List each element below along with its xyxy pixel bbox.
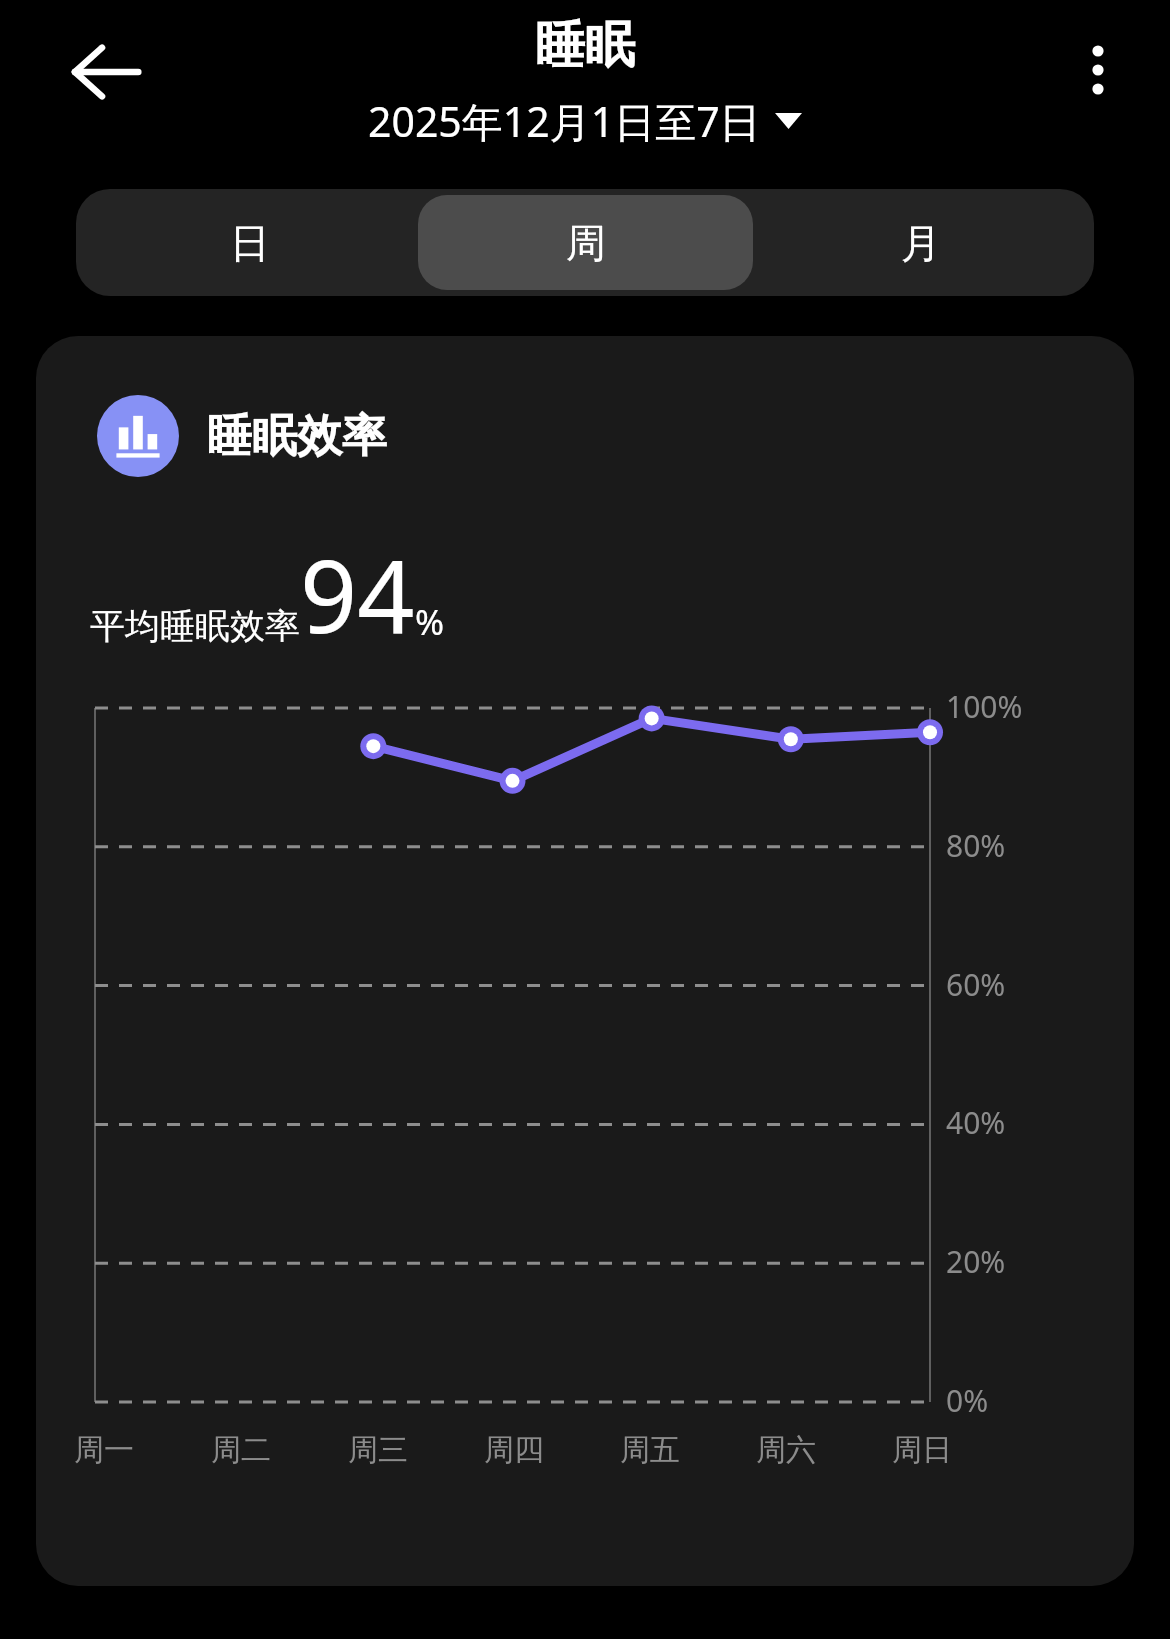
staticText: 周五 [620, 1431, 680, 1469]
staticText: 0% [946, 1380, 989, 1421]
staticText: 睡眠 [535, 14, 635, 77]
staticText: 80% [946, 825, 1006, 866]
staticText: 周六 [756, 1431, 816, 1469]
staticText: 周 [566, 218, 606, 268]
staticText: 20% [946, 1241, 1006, 1282]
staticText: 日 [230, 218, 270, 268]
staticText: 平均睡眠效率 [90, 604, 300, 648]
staticText: 40% [946, 1102, 1006, 1143]
staticText: 100% [946, 686, 1023, 727]
button[interactable]: 日 [82, 195, 418, 290]
button[interactable]: More options [1050, 22, 1146, 118]
staticText: 60% [946, 964, 1006, 1005]
staticText: 周一 [74, 1431, 134, 1469]
staticText: 94 [300, 526, 415, 662]
button[interactable]: 周 [418, 195, 753, 290]
staticText: 月 [901, 218, 941, 268]
staticText: % [415, 598, 445, 646]
button[interactable]: 月 [753, 195, 1088, 290]
staticText: 周三 [348, 1431, 408, 1469]
button[interactable]: Back [58, 24, 154, 120]
staticText: 2025年12月1日至7日 [368, 93, 761, 149]
button[interactable]: 睡眠效率 [36, 336, 1134, 1586]
staticText: 睡眠效率 [207, 408, 387, 465]
staticText: 周二 [211, 1431, 271, 1469]
staticText: 周日 [892, 1431, 952, 1469]
staticText: 周四 [484, 1431, 544, 1469]
button[interactable]: 2025年12月1日至7日 [360, 91, 810, 151]
